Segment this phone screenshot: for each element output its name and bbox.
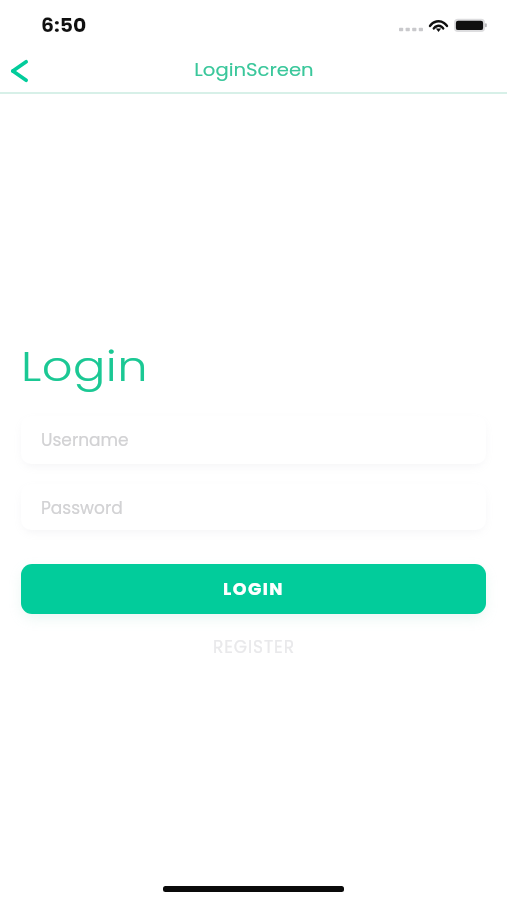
- staticText: Login: [21, 338, 148, 395]
- staticText: LoginScreen: [194, 57, 314, 82]
- staticText: Username: [41, 428, 129, 452]
- button[interactable]: LOGIN: [21, 564, 486, 614]
- button[interactable]: Password: [21, 484, 486, 530]
- button[interactable]: Back: [0, 48, 43, 94]
- staticText: Password: [41, 496, 123, 520]
- button[interactable]: Username: [21, 416, 486, 464]
- staticText: 6:50: [41, 11, 87, 39]
- staticText: LOGIN: [223, 577, 284, 602]
- button[interactable]: REGISTER: [0, 632, 507, 662]
- staticText: REGISTER: [213, 635, 295, 659]
